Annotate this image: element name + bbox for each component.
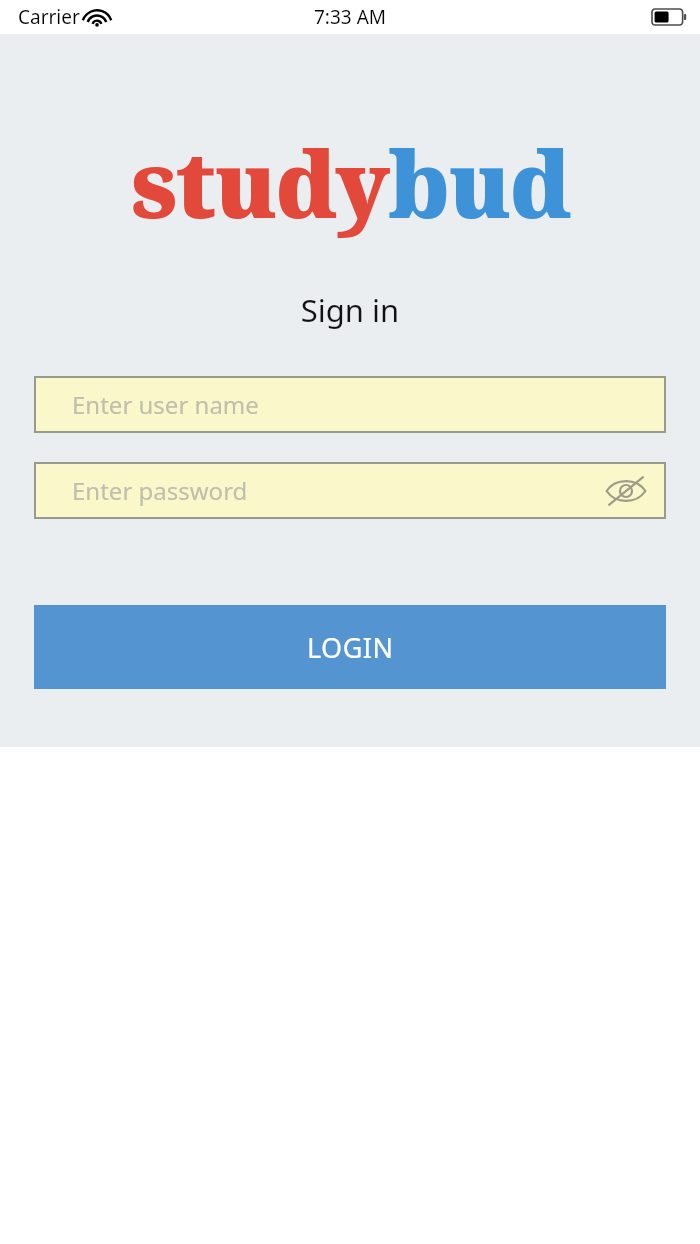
staticText: study	[131, 120, 388, 245]
button[interactable]: Show password	[600, 465, 652, 517]
button[interactable]: LOGIN	[34, 605, 666, 689]
staticText: Enter user name	[72, 388, 259, 421]
button[interactable]: Enter password	[34, 462, 666, 519]
staticText: LOGIN	[307, 629, 394, 666]
staticText: 7:33 AM	[314, 4, 387, 30]
button[interactable]: Enter user name	[34, 376, 666, 433]
staticText: Sign in	[0, 289, 700, 331]
staticText: Carrier	[18, 4, 80, 30]
staticText: Enter password	[72, 474, 248, 507]
staticText: bud	[388, 120, 570, 245]
